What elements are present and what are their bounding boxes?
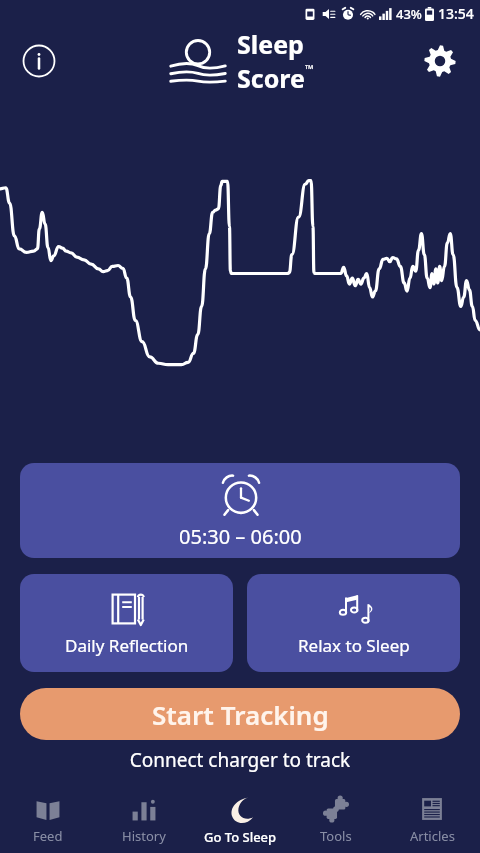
button[interactable]: 05:30 – 06:00: [20, 463, 460, 558]
button[interactable]: Go To Sleep: [192, 787, 288, 853]
button[interactable]: Articles: [384, 787, 480, 853]
button[interactable]: Info: [18, 40, 60, 82]
staticText: 13:54: [438, 4, 474, 23]
staticText: 05:30 – 06:00: [179, 523, 302, 550]
staticText: Articles: [410, 827, 455, 845]
button[interactable]: Feed: [0, 787, 96, 853]
staticText: 43%: [396, 5, 422, 23]
staticText: Daily Reflection: [65, 634, 189, 657]
button[interactable]: Tools: [288, 787, 384, 853]
staticText: Relax to Sleep: [298, 634, 410, 657]
staticText: Start Tracking: [152, 697, 329, 732]
button[interactable]: Daily Reflection: [20, 574, 233, 672]
button[interactable]: Start Tracking: [20, 688, 460, 740]
staticText: Sleep: [237, 27, 304, 61]
staticText: Score: [237, 61, 305, 95]
staticText: History: [122, 827, 166, 845]
button[interactable]: History: [96, 787, 192, 853]
staticText: Go To Sleep: [204, 828, 277, 846]
staticText: Feed: [33, 827, 63, 845]
button[interactable]: Relax to Sleep: [247, 574, 460, 672]
button[interactable]: Settings: [418, 39, 462, 83]
staticText: Connect charger to track: [20, 747, 460, 773]
staticText: ™: [305, 61, 314, 76]
staticText: Tools: [320, 827, 352, 845]
